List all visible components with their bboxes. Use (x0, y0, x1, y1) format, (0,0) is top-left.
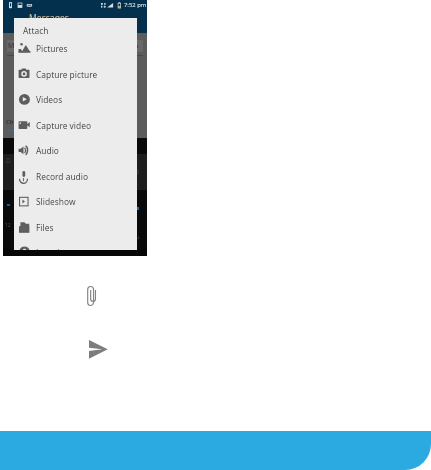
staticText: p (135, 167, 139, 176)
button[interactable]: Slideshow (14, 188, 137, 214)
staticText: Messages (29, 12, 69, 24)
button[interactable]: Record audio (14, 163, 137, 189)
staticText: Capture video (36, 120, 91, 131)
staticText: A (134, 41, 139, 51)
staticText: 12 (5, 222, 11, 229)
button[interactable]: Pictures (14, 35, 137, 61)
staticText: Slideshow (36, 196, 76, 207)
staticText: Attach (23, 25, 49, 36)
staticText: Record audio (36, 171, 88, 182)
staticText: Location (36, 247, 70, 250)
button[interactable]: Audio (14, 137, 137, 163)
staticText: Videos (36, 94, 63, 105)
button[interactable]: Location (14, 239, 137, 250)
staticText: Ch (6, 118, 14, 126)
button[interactable]: Capture video (14, 112, 137, 138)
staticText: Pictures (36, 43, 68, 54)
button[interactable]: Capture picture (14, 61, 137, 87)
staticText: D (6, 156, 11, 165)
staticText: Capture picture (36, 69, 98, 80)
button[interactable]: Attach (86, 284, 98, 308)
button[interactable]: Videos (14, 86, 137, 112)
staticText: Audio (36, 145, 59, 156)
staticText: Files (36, 222, 54, 233)
staticText: 7:52 pm (124, 1, 147, 9)
staticText: M (8, 41, 15, 51)
button[interactable]: Files (14, 214, 137, 240)
button[interactable]: Send (89, 340, 108, 359)
staticText: u (136, 233, 140, 240)
